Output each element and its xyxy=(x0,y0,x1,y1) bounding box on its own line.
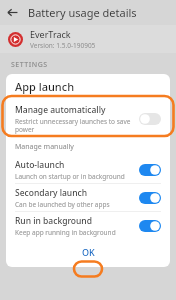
staticText: EverTrack xyxy=(30,28,71,40)
button[interactable]: On xyxy=(139,220,161,232)
button[interactable]: Back xyxy=(0,0,25,25)
button[interactable]: Manage automatically xyxy=(6,99,170,138)
staticText: Launch on startup or in background xyxy=(15,172,125,181)
staticText: Can be launched by other apps xyxy=(15,200,110,209)
staticText: OK xyxy=(82,246,95,258)
staticText: Battery usage details xyxy=(28,5,137,20)
staticText: Secondary launch xyxy=(15,187,87,199)
staticText: Manage automatically xyxy=(15,104,106,116)
staticText: Version: 1.5.0-190905 xyxy=(30,41,96,50)
button[interactable]: Auto-launch xyxy=(6,156,170,183)
staticText: Manage manually xyxy=(15,142,74,152)
button[interactable]: Run in background xyxy=(6,212,170,239)
button[interactable]: EverTrack xyxy=(0,25,176,53)
staticText: SETTINGS xyxy=(11,60,48,70)
button[interactable]: OK xyxy=(70,242,107,262)
staticText: App launch xyxy=(15,79,75,94)
staticText: Run in background xyxy=(15,215,92,227)
staticText: Auto-launch xyxy=(15,159,65,171)
button[interactable]: Secondary launch xyxy=(6,184,170,211)
button[interactable]: Off xyxy=(139,113,161,125)
button[interactable]: On xyxy=(139,164,161,176)
staticText: Restrict unnecessary launches to save po… xyxy=(15,117,133,134)
button[interactable]: On xyxy=(139,192,161,204)
staticText: Keep app running in background xyxy=(15,228,116,237)
